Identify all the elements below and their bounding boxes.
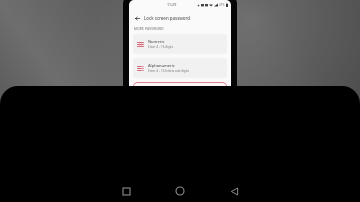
button[interactable]: Alphanumeric bbox=[133, 58, 227, 78]
button[interactable]: Pattern bbox=[133, 82, 227, 102]
button[interactable]: Recent apps bbox=[110, 180, 142, 202]
staticText: Alphanumeric bbox=[148, 63, 175, 68]
staticText: Numeric bbox=[148, 39, 165, 44]
staticText: 11:29 bbox=[167, 2, 177, 7]
staticText: Lock screen password bbox=[144, 15, 190, 21]
staticText: Enter 4 – 16 letters and digits bbox=[148, 69, 190, 73]
staticText: MORE PASSWORD bbox=[134, 27, 164, 31]
button[interactable]: Back bbox=[133, 14, 142, 23]
button[interactable]: Home bbox=[164, 180, 196, 202]
staticText: 47% bbox=[219, 3, 225, 7]
button[interactable]: Numeric bbox=[133, 34, 227, 54]
staticText: Enter 4 – 16 digits bbox=[148, 45, 174, 49]
button[interactable]: Back bbox=[218, 180, 250, 202]
